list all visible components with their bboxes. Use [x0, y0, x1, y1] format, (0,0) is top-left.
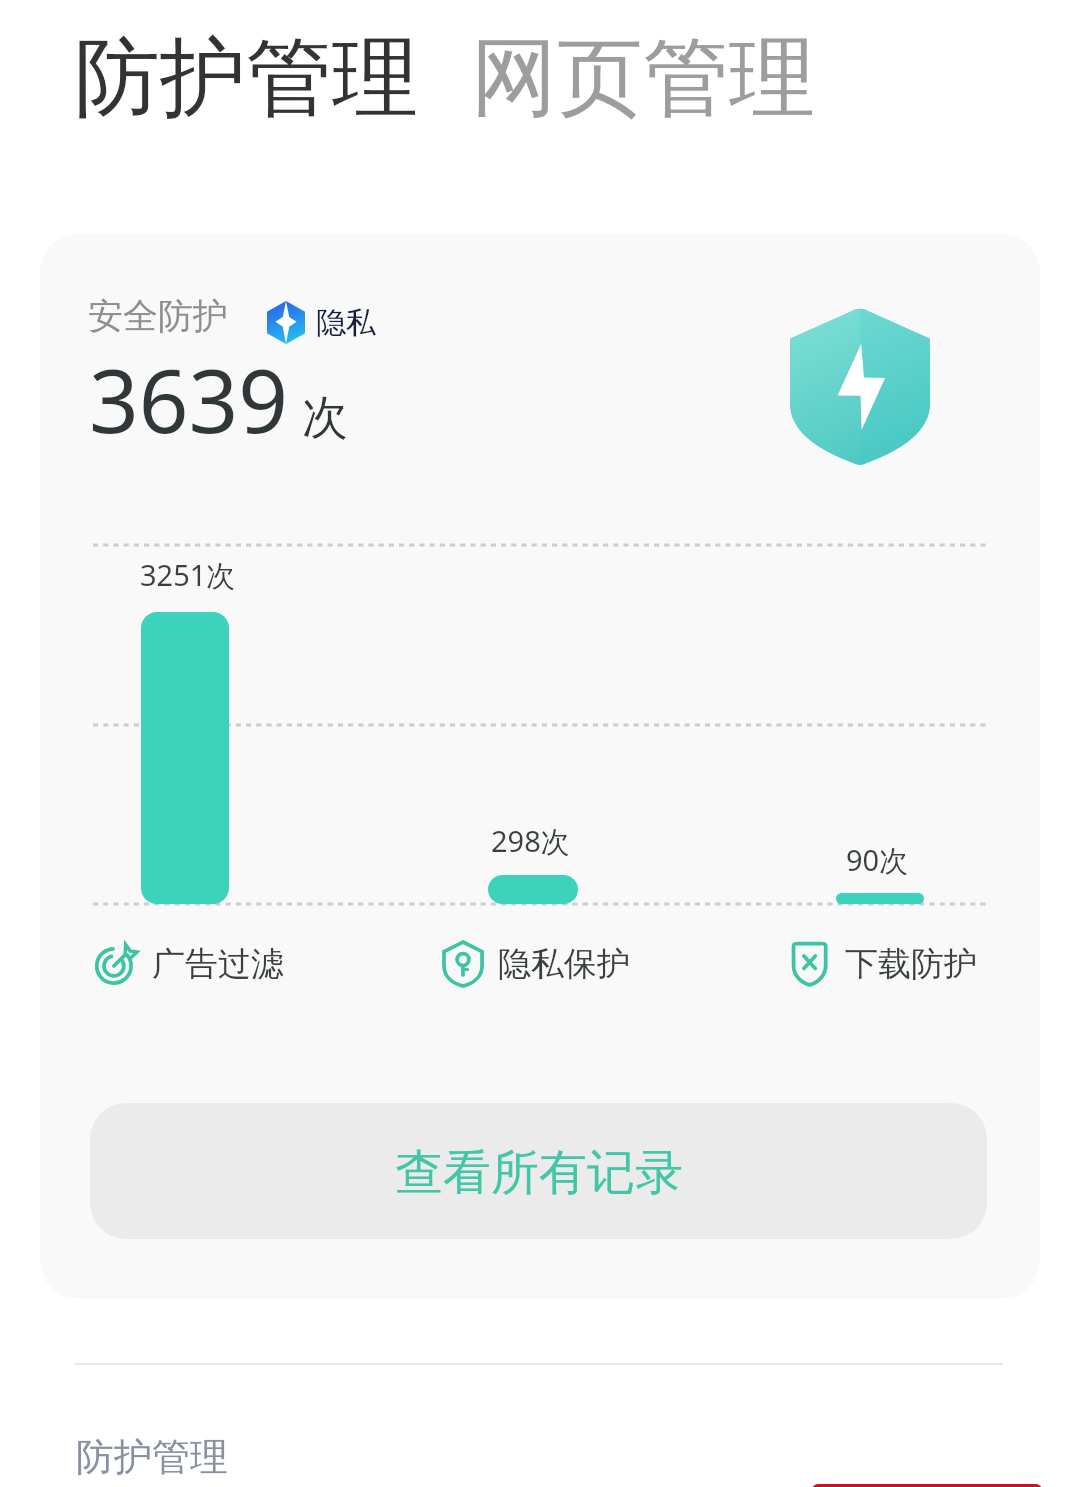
button[interactable]: 查看所有记录: [90, 1103, 987, 1239]
staticText: 隐私保护: [498, 943, 630, 985]
staticText: 298次: [491, 821, 570, 861]
staticText: 3639: [89, 340, 289, 458]
staticText: 查看所有记录: [395, 1143, 683, 1203]
staticText: 网页管理: [471, 24, 815, 132]
staticText: 安全防护: [88, 294, 228, 338]
button[interactable]: 防护管理: [76, 1433, 228, 1481]
button[interactable]: 网页管理: [471, 24, 815, 132]
button[interactable]: 隐私保护: [444, 942, 630, 986]
staticText: 3251次: [140, 555, 236, 595]
staticText: 下载防护: [845, 943, 977, 985]
other: 隐私: [267, 301, 305, 344]
button[interactable]: 广告过滤: [95, 942, 284, 986]
button[interactable]: 防护管理: [74, 24, 418, 132]
button[interactable]: 更多: [812, 1484, 1042, 1487]
staticText: 防护管理: [76, 1433, 228, 1481]
other: 安全防护: [790, 309, 930, 465]
staticText: 隐私: [316, 304, 376, 342]
staticText: 90次: [846, 840, 909, 880]
staticText: 广告过滤: [152, 943, 284, 985]
button[interactable]: 下载防护: [792, 942, 977, 986]
staticText: 防护管理: [74, 24, 418, 132]
staticText: 次: [302, 389, 348, 447]
